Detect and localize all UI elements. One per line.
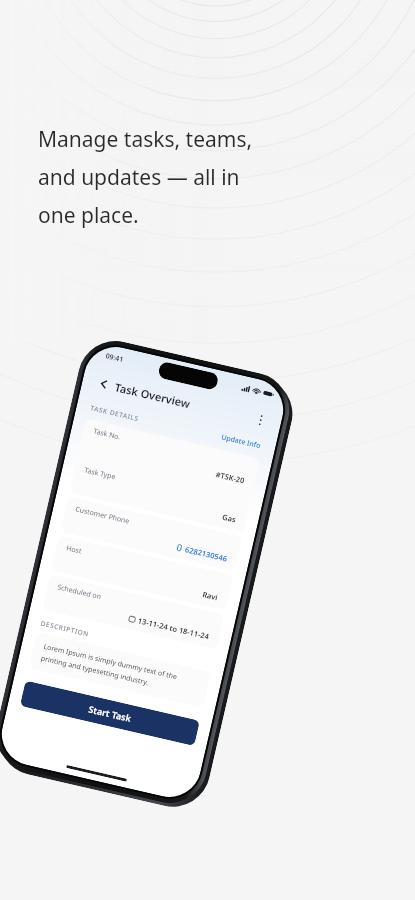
- button[interactable]: Task No.: [78, 418, 260, 494]
- staticText: Task Type: [83, 465, 117, 482]
- staticText: #TSK-20: [215, 469, 246, 486]
- staticText: Ravi: [201, 589, 219, 602]
- staticText: TASK DETAILS: [90, 403, 140, 423]
- staticText: DESCRIPTION: [40, 619, 91, 639]
- staticText: Update Info: [220, 432, 262, 451]
- staticText: one place.: [38, 201, 139, 230]
- staticText: 6282130546: [184, 544, 228, 564]
- staticText: and updates — all in: [38, 163, 240, 192]
- button[interactable]: Task Type: [69, 457, 251, 533]
- button[interactable]: Back: [94, 374, 113, 393]
- staticText: Lorem Ipsum is simply dummy text of the …: [40, 642, 200, 698]
- staticText: Task No.: [92, 426, 122, 442]
- staticText: 13-11-24 to 18-11-24: [137, 615, 210, 642]
- button[interactable]: More options: [251, 410, 270, 429]
- staticText: Manage tasks, teams,: [38, 125, 253, 154]
- button[interactable]: Host: [51, 535, 233, 611]
- button[interactable]: Scheduled on: [42, 574, 224, 650]
- staticText: Start Task: [88, 703, 133, 724]
- staticText: Host: [65, 543, 83, 557]
- staticText: 09:41: [104, 351, 124, 365]
- staticText: Customer Phone: [74, 504, 131, 527]
- button[interactable]: Start Task: [20, 680, 200, 746]
- button[interactable]: Customer Phone: [60, 496, 242, 572]
- button[interactable]: Update Info: [220, 432, 262, 451]
- staticText: Task Overview: [113, 379, 192, 411]
- staticText: Gas: [221, 512, 237, 525]
- staticText: Scheduled on: [56, 582, 102, 602]
